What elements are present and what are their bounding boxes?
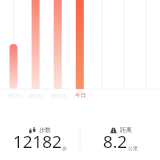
other: Distance	[110, 127, 117, 134]
button[interactable]: Distance	[80, 126, 160, 156]
staticText: 12182	[13, 130, 62, 152]
staticText: 公里	[128, 145, 138, 151]
staticText: 距离	[120, 126, 132, 134]
staticText: 05/13	[51, 92, 66, 99]
staticText: 05/12	[29, 92, 44, 99]
staticText: 步数	[39, 126, 51, 134]
staticText: 今日	[75, 92, 86, 99]
other: Steps	[29, 127, 36, 134]
staticText: 8.2	[103, 130, 128, 152]
button[interactable]: Steps	[0, 126, 80, 156]
staticText: 步	[62, 145, 67, 151]
staticText: 05/11	[7, 92, 22, 99]
